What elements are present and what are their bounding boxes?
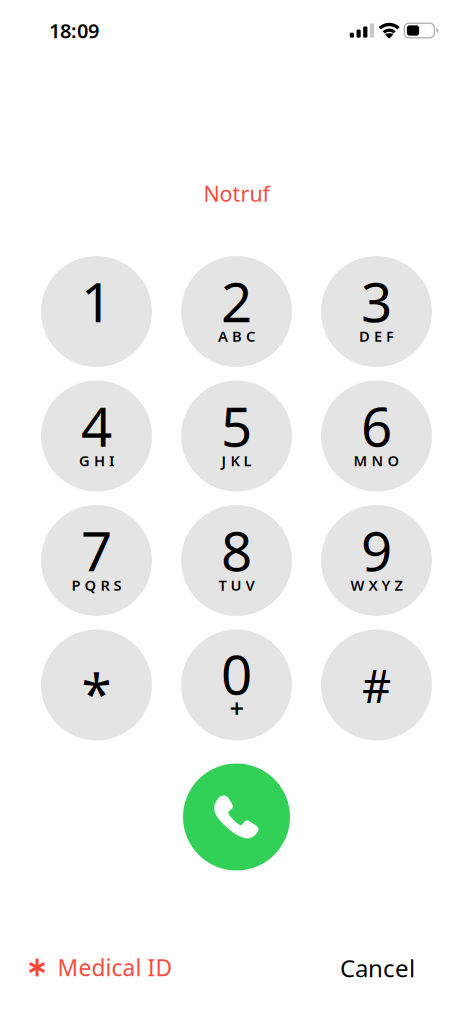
staticText: 3: [361, 265, 392, 337]
button[interactable]: 8 T U V: [181, 505, 292, 616]
button[interactable]: Medical ID: [22, 942, 179, 992]
button[interactable]: star: [41, 629, 152, 740]
staticText: D E F: [359, 326, 394, 346]
staticText: Medical ID: [58, 952, 173, 982]
staticText: 8: [221, 514, 252, 586]
staticText: 6: [361, 389, 392, 462]
staticText: 4: [81, 389, 112, 462]
button[interactable]: 2 A B C: [181, 256, 292, 367]
staticText: 18:09: [49, 17, 99, 44]
button[interactable]: 3 D E F: [321, 256, 432, 367]
staticText: 7: [81, 514, 112, 586]
button[interactable]: 6 M N O: [321, 380, 432, 491]
button[interactable]: 9 W X Y Z: [321, 505, 432, 616]
staticText: 2: [221, 265, 252, 337]
staticText: T U V: [218, 575, 254, 595]
staticText: 1: [81, 265, 112, 337]
staticText: Cancel: [340, 952, 415, 984]
staticText: *: [81, 657, 111, 729]
button[interactable]: 1: [41, 256, 152, 367]
button[interactable]: 7 P Q R S: [41, 505, 152, 616]
button[interactable]: 0 +: [181, 629, 292, 740]
staticText: 9: [361, 514, 392, 586]
staticText: #: [362, 655, 391, 716]
button[interactable]: 4 G H I: [41, 380, 152, 491]
staticText: J K L: [221, 451, 251, 470]
staticText: 5: [221, 389, 252, 462]
staticText: W X Y Z: [350, 575, 402, 595]
staticText: +: [229, 691, 243, 725]
staticText: G H I: [79, 451, 114, 470]
staticText: A B C: [218, 326, 255, 346]
button[interactable]: Call: [183, 763, 290, 870]
button[interactable]: Cancel: [330, 942, 425, 994]
staticText: 0: [221, 637, 252, 710]
staticText: Notruf: [203, 179, 269, 208]
button[interactable]: pound: [321, 629, 432, 740]
button[interactable]: 5 J K L: [181, 380, 292, 491]
staticText: P Q R S: [71, 575, 121, 595]
staticText: M N O: [353, 451, 399, 470]
